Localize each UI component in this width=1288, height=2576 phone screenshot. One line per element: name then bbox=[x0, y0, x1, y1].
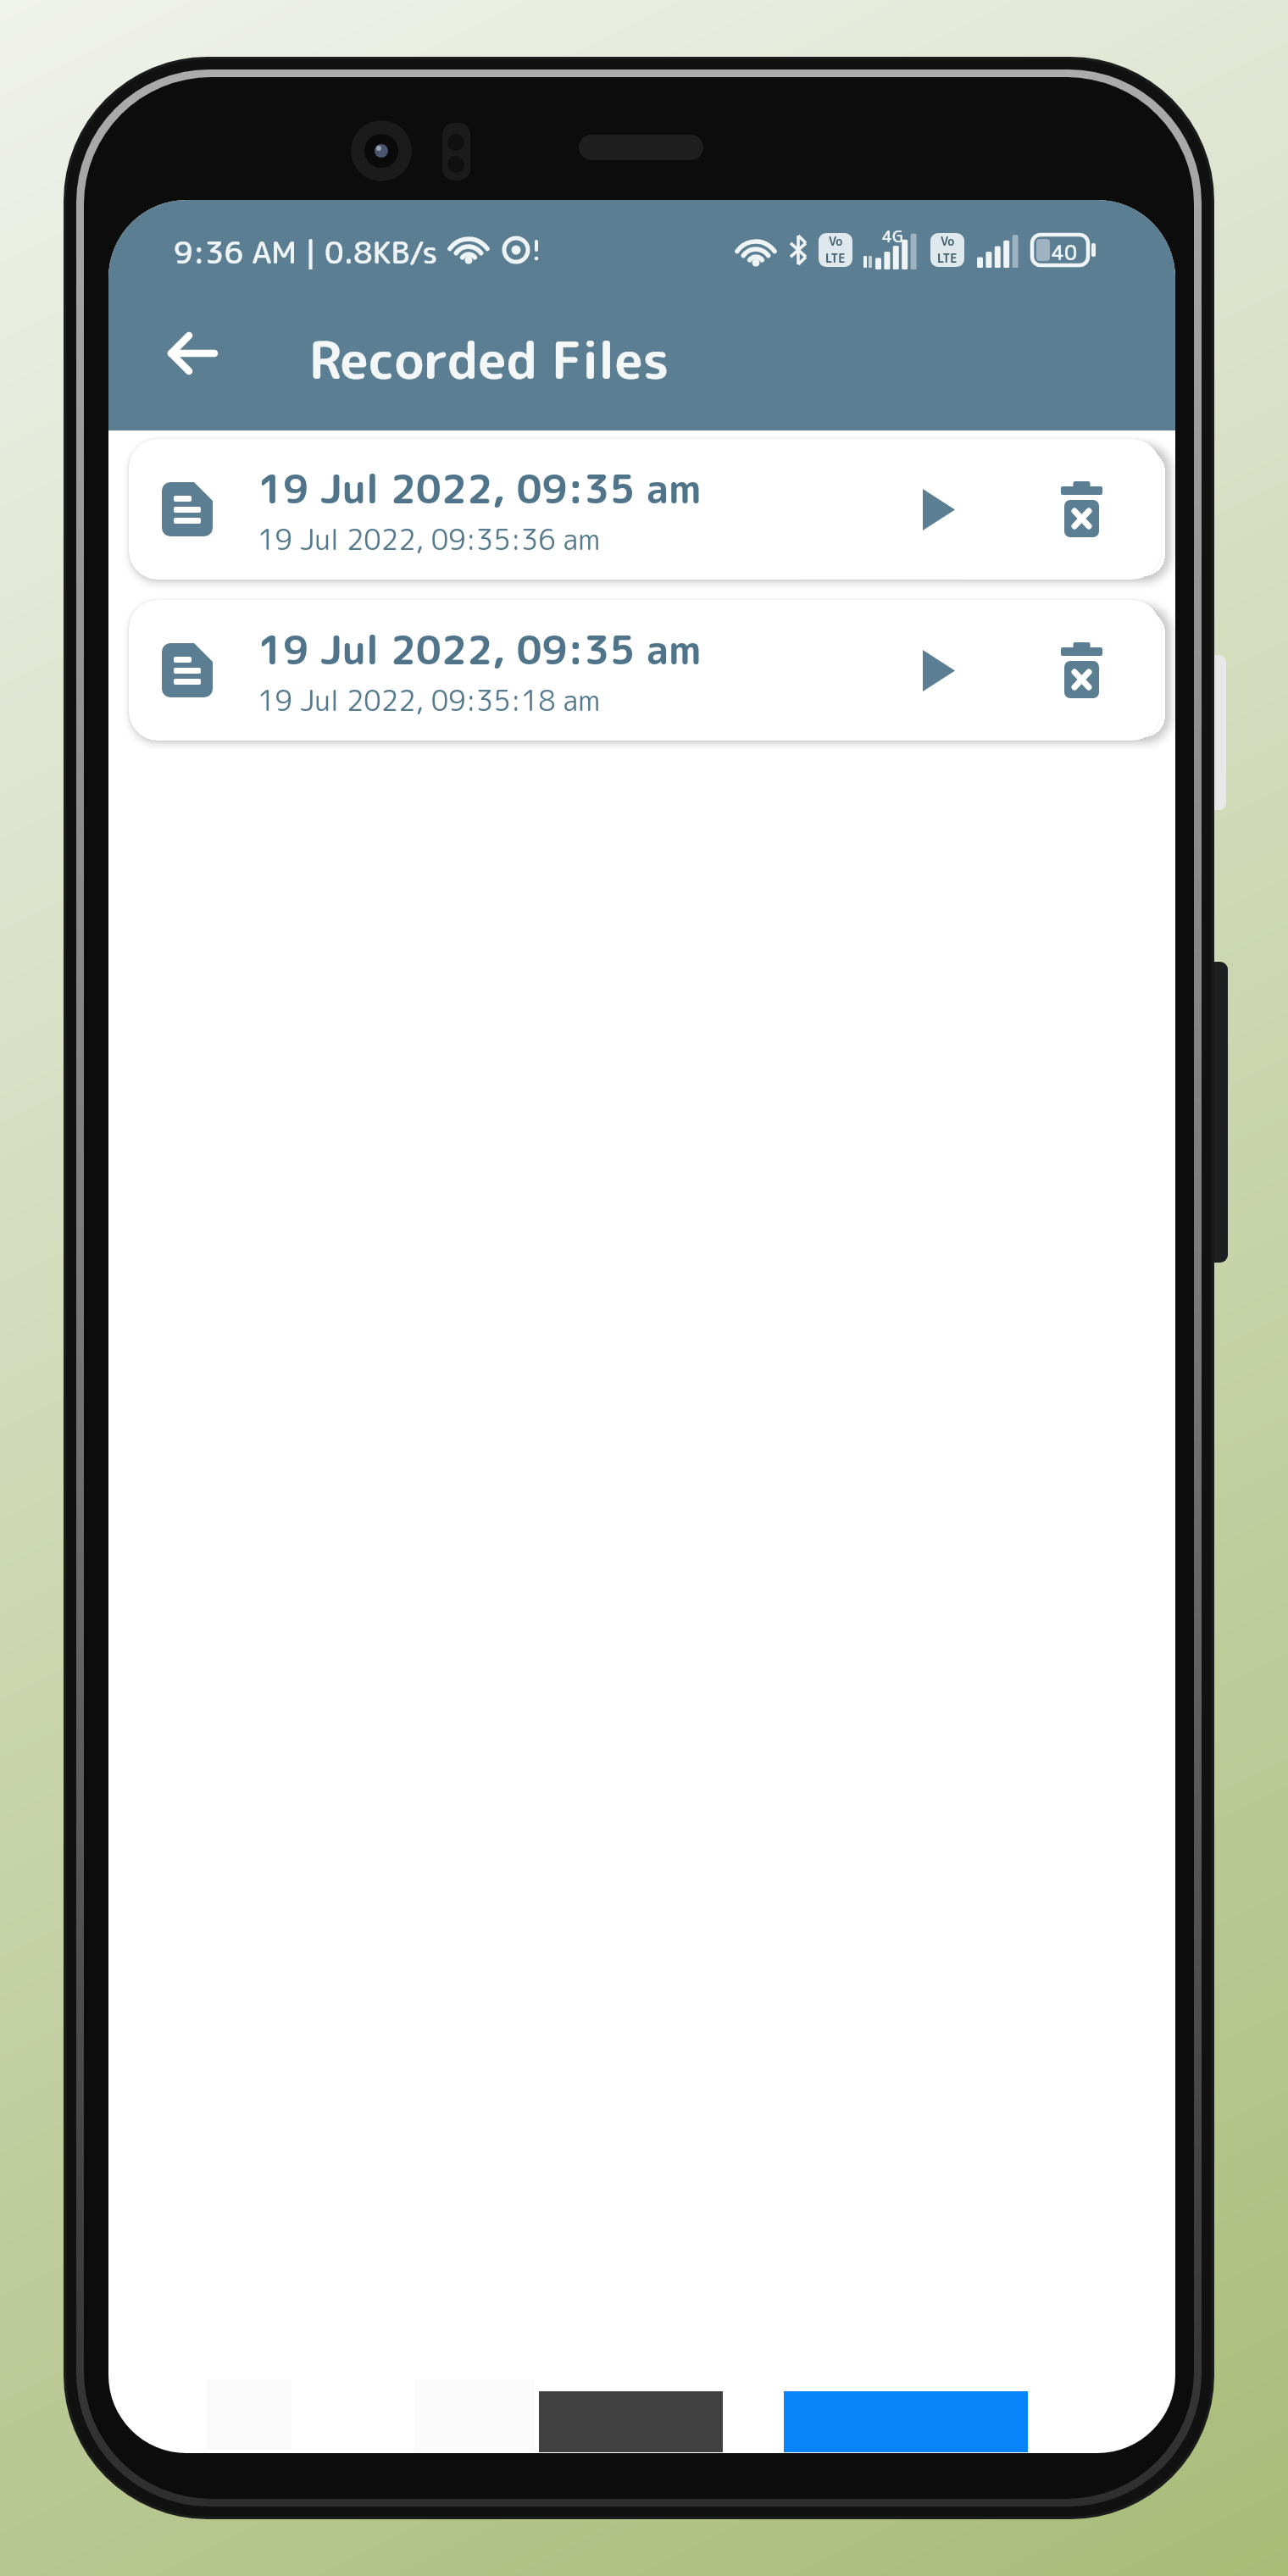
button[interactable]: 19 Jul 2022, 09:35 am bbox=[129, 600, 1161, 741]
button[interactable] bbox=[539, 2391, 723, 2452]
staticText: Vo bbox=[829, 233, 843, 250]
staticText: 19 Jul 2022, 09:35:36 am bbox=[258, 520, 601, 559]
button[interactable]: 19 Jul 2022, 09:35 am bbox=[129, 439, 1161, 580]
button[interactable] bbox=[1055, 636, 1108, 704]
staticText: LTE bbox=[937, 250, 958, 267]
staticText: 19 Jul 2022, 09:35:18 am bbox=[258, 681, 601, 720]
staticText: Vo bbox=[941, 233, 955, 250]
staticText: 19 Jul 2022, 09:35 am bbox=[258, 621, 702, 677]
staticText: 4G bbox=[882, 225, 904, 248]
staticText: 40 bbox=[1052, 238, 1078, 266]
staticText: 19 Jul 2022, 09:35 am bbox=[258, 460, 702, 516]
button[interactable] bbox=[784, 2391, 1028, 2452]
button[interactable] bbox=[914, 480, 963, 539]
button[interactable] bbox=[914, 641, 963, 700]
button[interactable] bbox=[1055, 475, 1108, 543]
button[interactable] bbox=[158, 320, 225, 386]
staticText: Recorded Files bbox=[309, 324, 669, 395]
staticText: LTE bbox=[825, 250, 846, 267]
staticText: 9:36 AM | 0.8KB/s bbox=[174, 230, 438, 269]
